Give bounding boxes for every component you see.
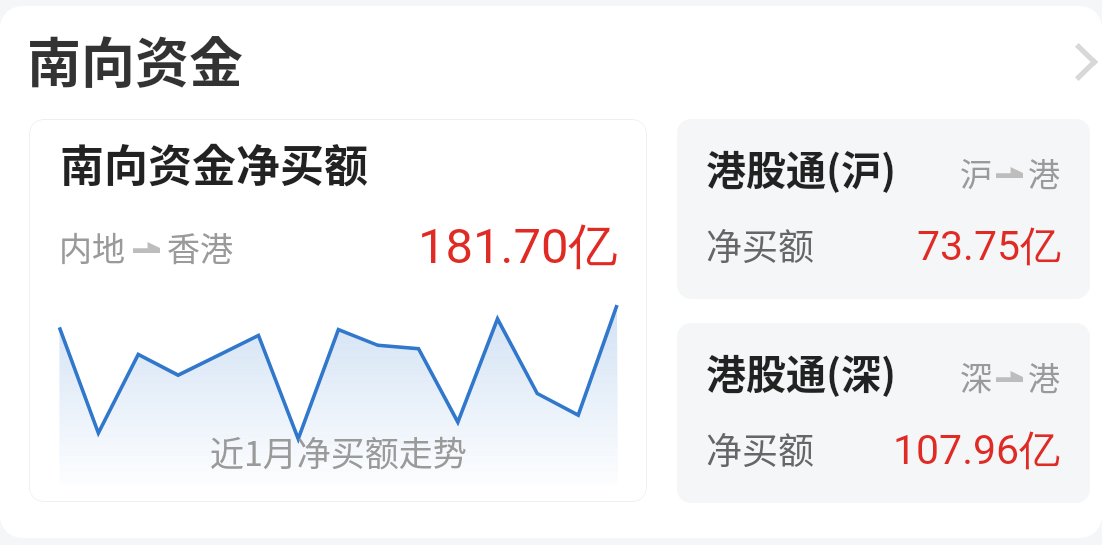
staticText: 近1月净买额走势 <box>210 427 467 476</box>
staticText: 内地 <box>59 223 125 271</box>
staticText: 南向资金 <box>27 20 243 98</box>
button[interactable]: 查看更多 <box>1060 36 1102 88</box>
button[interactable]: 南向资金净买额 <box>29 119 647 502</box>
button[interactable]: 南向资金 <box>0 6 1102 111</box>
staticText: 净买额 <box>706 218 815 270</box>
staticText: 深 <box>960 353 993 399</box>
staticText: 净买额 <box>706 422 815 474</box>
staticText: 港股通(沪) <box>706 139 897 197</box>
staticText: 107.96亿 <box>893 425 1061 477</box>
staticText: 港股通(深) <box>706 343 897 401</box>
staticText: 沪 <box>960 149 993 195</box>
button[interactable]: 港股通(沪) <box>677 119 1090 299</box>
button[interactable]: 港股通(深) <box>677 323 1090 503</box>
staticText: 香港 <box>167 223 233 271</box>
staticText: 南向资金净买额 <box>60 131 368 195</box>
staticText: 73.75亿 <box>917 221 1061 273</box>
staticText: 181.70亿 <box>418 216 618 278</box>
staticText: 港 <box>1028 353 1061 399</box>
staticText: 港 <box>1028 149 1061 195</box>
